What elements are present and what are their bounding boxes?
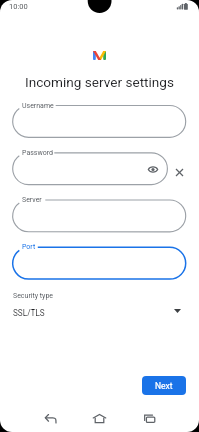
button[interactable]: Back (39, 407, 61, 429)
staticText: SSL/TLS (13, 308, 45, 318)
staticText: Security type (13, 292, 54, 300)
button[interactable]: Next (142, 376, 186, 395)
button[interactable]: Show password (146, 161, 160, 177)
staticText: Incoming server settings (0, 74, 199, 90)
staticText: Server (22, 196, 42, 204)
button[interactable]: Port (13, 247, 186, 279)
button[interactable]: Security type (0, 289, 199, 321)
staticText: Username (22, 102, 54, 110)
button[interactable]: Clear (171, 164, 188, 181)
button[interactable]: Password (13, 153, 168, 185)
button[interactable]: Home (88, 407, 110, 429)
staticText: Port (22, 243, 36, 251)
button[interactable]: Server (13, 200, 186, 232)
staticText: 10:00 (9, 2, 28, 11)
staticText: Next (155, 381, 173, 391)
button[interactable]: Username (13, 106, 186, 138)
staticText: Password (22, 149, 53, 157)
button[interactable]: Recent apps (138, 407, 160, 429)
